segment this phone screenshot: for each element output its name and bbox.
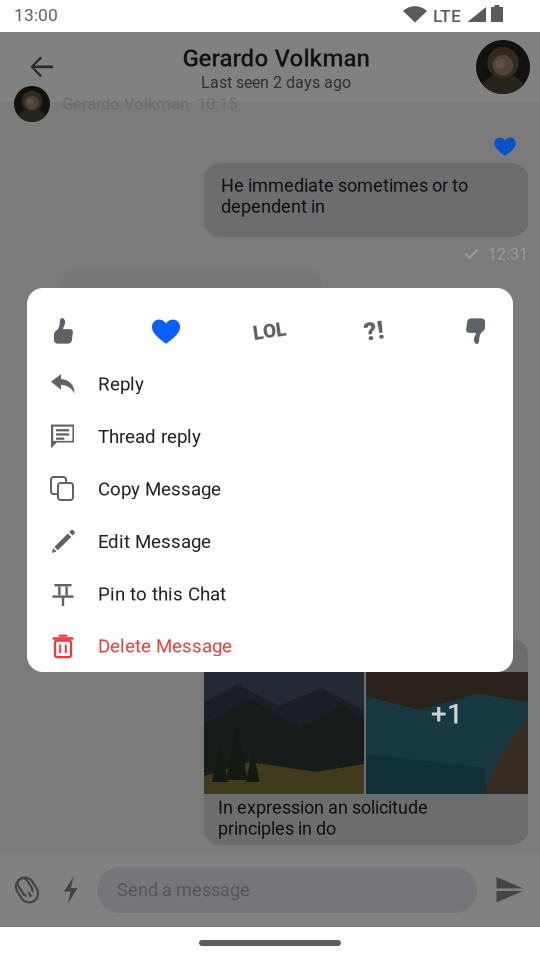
staticText: LTE <box>433 6 461 26</box>
button[interactable]: Attach file <box>3 867 51 913</box>
staticText: LOL <box>253 320 287 342</box>
staticText: Edit Message <box>98 531 211 552</box>
staticText: Thread reply <box>98 426 201 447</box>
button[interactable]: Edit Message <box>27 515 513 567</box>
button[interactable]: Send <box>488 867 532 913</box>
staticText: Reply <box>98 373 144 395</box>
button[interactable]: Pin to this Chat <box>27 568 513 620</box>
staticText: Delete Message <box>98 635 232 657</box>
button[interactable]: Heart reaction <box>134 300 198 362</box>
button[interactable]: Copy Message <box>27 463 513 515</box>
button[interactable]: Surprised reaction <box>342 300 406 362</box>
staticText: 12:31 <box>488 245 528 264</box>
staticText: Pin to this Chat <box>98 583 226 605</box>
staticText: Gerardo Volkman 10:15 <box>62 94 237 114</box>
staticText: Copy Message <box>98 478 221 500</box>
button[interactable]: LOL reaction <box>238 300 302 362</box>
staticText: Gerardo Volkman <box>182 44 369 72</box>
staticText: In expression an solicitude principles i… <box>218 797 428 839</box>
button[interactable]: Profile photo <box>472 36 534 98</box>
button[interactable]: Back <box>10 36 74 98</box>
button[interactable]: Delete Message <box>27 620 513 672</box>
staticText: +1 <box>431 698 463 730</box>
button[interactable]: Thumbs up reaction <box>31 300 95 362</box>
staticText: He immediate sometimes or to dependent i… <box>221 175 468 217</box>
button[interactable]: Send a message <box>97 867 477 913</box>
staticText: Last seen 2 days ago <box>201 73 351 92</box>
staticText: Send a message <box>117 879 250 901</box>
button[interactable]: Thumbs down reaction <box>444 300 508 362</box>
button[interactable]: Reply <box>27 358 513 410</box>
button[interactable]: Thread reply <box>27 410 513 462</box>
staticText: 13:00 <box>14 5 58 25</box>
staticText: ?! <box>364 316 384 346</box>
button[interactable]: Quick actions <box>50 867 90 913</box>
